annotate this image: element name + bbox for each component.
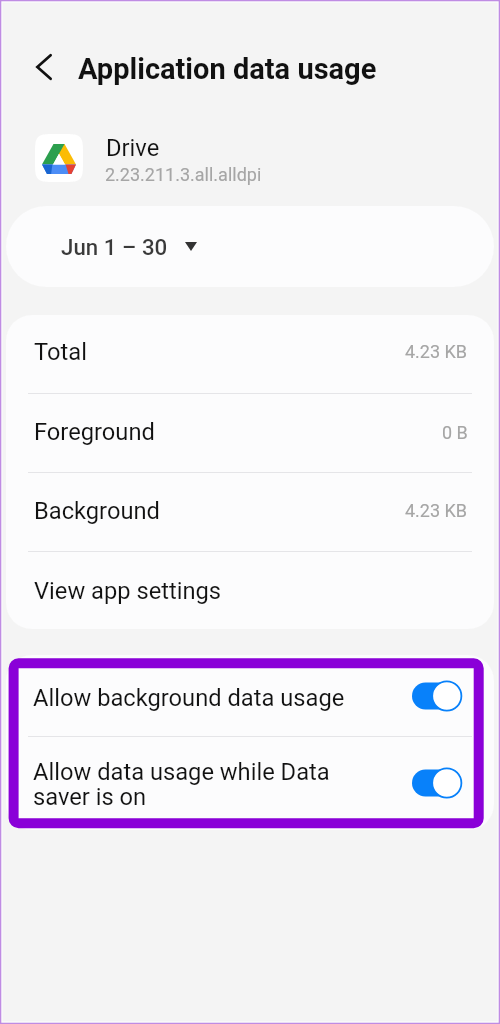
staticText: Drive	[106, 134, 160, 162]
staticText: 0 B	[442, 422, 468, 443]
button[interactable]: Allow background data usage, on	[412, 680, 462, 712]
button[interactable]: Back	[22, 45, 66, 89]
staticText: Background	[34, 497, 160, 525]
staticText: Allow background data usage	[33, 684, 345, 712]
button[interactable]: Allow data usage while Data saver is on,…	[412, 767, 462, 799]
staticText: 4.23 KB	[405, 500, 468, 521]
staticText: Foreground	[34, 418, 155, 446]
staticText: Application data usage	[78, 52, 377, 86]
staticText: Jun 1 – 30	[61, 234, 168, 260]
button[interactable]: Allow data usage while Data saver is on	[6, 736, 494, 830]
button[interactable]: Background	[6, 472, 494, 551]
button[interactable]: Jun 1 – 30	[6, 206, 494, 287]
staticText: View app settings	[34, 577, 222, 605]
staticText: Total	[34, 338, 87, 366]
button[interactable]: Total	[6, 315, 494, 392]
button[interactable]: Allow background data usage	[6, 655, 494, 736]
staticText: Allow data usage while Data saver is on	[33, 758, 330, 810]
staticText: 4.23 KB	[405, 341, 468, 362]
button[interactable]: Foreground	[6, 392, 494, 472]
staticText: 2.23.211.3.all.alldpi	[105, 164, 262, 185]
button[interactable]: View app settings	[6, 551, 494, 629]
